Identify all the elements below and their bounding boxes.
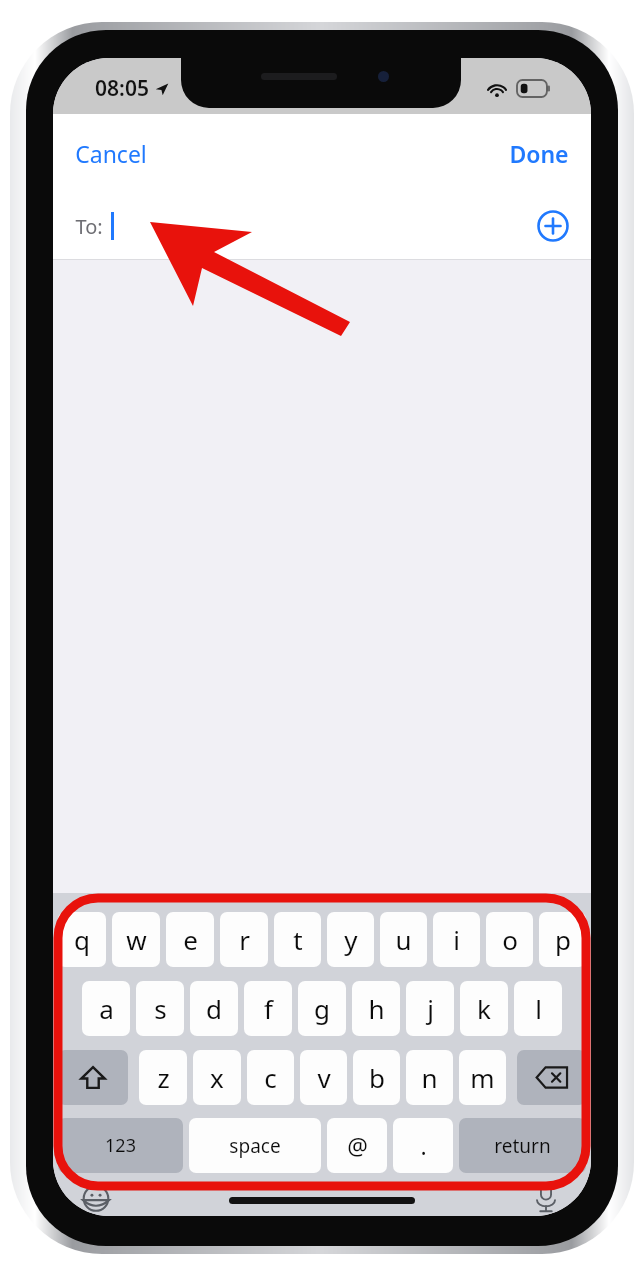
staticText: b [369,1060,385,1095]
button[interactable]: u [380,912,427,967]
button[interactable]: t [274,912,321,967]
button[interactable]: j [406,981,454,1036]
staticText: m [470,1060,495,1095]
button[interactable]: space [189,1118,321,1173]
staticText: r [239,922,250,957]
button[interactable]: b [353,1050,400,1105]
button[interactable]: Emoji [77,1181,115,1216]
button[interactable]: 123 [58,1118,183,1173]
staticText: 08:05 [95,74,149,103]
button[interactable]: o [486,912,533,967]
button[interactable]: d [190,981,238,1036]
button[interactable]: w [112,912,160,967]
staticText: c [264,1060,277,1095]
button[interactable]: Backspace [517,1050,586,1105]
staticText: w [126,922,147,957]
button[interactable]: p [539,912,586,967]
staticText: u [395,922,412,957]
button[interactable]: z [139,1050,187,1105]
button[interactable]: l [514,981,562,1036]
staticText: x [210,1060,224,1095]
button[interactable]: Done [497,130,581,177]
staticText: z [157,1060,170,1095]
staticText: s [154,991,167,1026]
staticText: j [427,991,434,1026]
staticText: k [477,991,491,1026]
button[interactable]: return [459,1118,586,1173]
staticText: l [535,991,542,1026]
button[interactable]: m [459,1050,506,1105]
button[interactable]: h [352,981,400,1036]
staticText: f [264,991,273,1026]
button[interactable]: k [460,981,508,1036]
staticText: a [99,991,114,1026]
button[interactable]: q [58,912,106,967]
button[interactable]: . [393,1118,453,1173]
staticText: t [293,922,303,957]
button[interactable]: @ [327,1118,387,1173]
staticText: 123 [105,1133,136,1158]
button[interactable]: s [136,981,184,1036]
staticText: d [206,991,222,1026]
button[interactable]: f [244,981,292,1036]
staticText: n [421,1060,438,1095]
staticText: . [420,1130,427,1161]
button[interactable]: a [82,981,130,1036]
button[interactable]: Dictation [531,1181,561,1216]
button[interactable]: Add contact [531,204,575,248]
staticText: return [494,1133,551,1159]
staticText: i [453,922,460,957]
staticText: Cancel [75,138,147,169]
button[interactable]: r [220,912,268,967]
button[interactable]: g [298,981,346,1036]
button[interactable]: c [247,1050,294,1105]
button[interactable]: n [406,1050,453,1105]
staticText: p [555,922,571,957]
staticText: To: [75,213,103,240]
staticText: h [368,991,385,1026]
button[interactable]: x [193,1050,241,1105]
button[interactable]: y [327,912,374,967]
staticText: @ [347,1130,368,1161]
staticText: e [183,922,198,957]
button[interactable]: Shift [58,1050,128,1105]
button[interactable]: Cancel [63,130,159,177]
staticText: y [344,922,358,957]
staticText: g [314,991,330,1026]
staticText: q [74,922,90,957]
staticText: v [317,1060,331,1095]
staticText: o [502,922,518,957]
staticText: Done [509,138,569,169]
button[interactable]: e [166,912,214,967]
staticText: space [229,1133,281,1159]
button[interactable]: v [300,1050,347,1105]
button[interactable]: i [433,912,480,967]
